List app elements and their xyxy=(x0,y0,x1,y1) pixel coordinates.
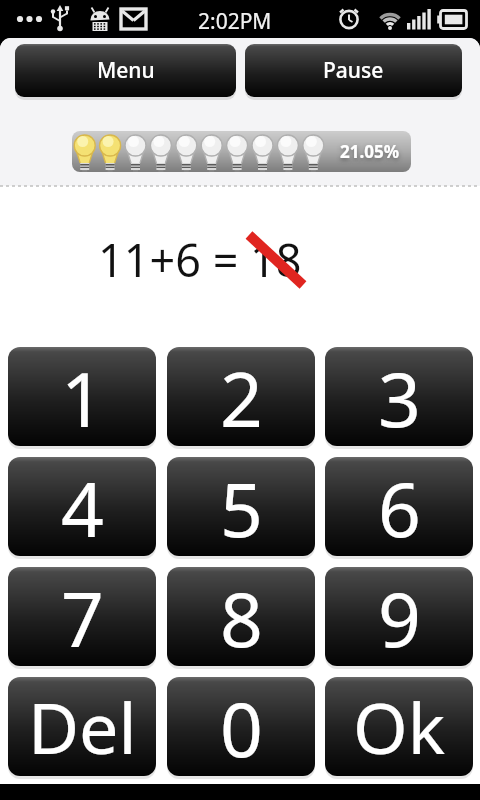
button[interactable]: 2 xyxy=(167,347,315,446)
staticText: 8 xyxy=(220,567,263,666)
button[interactable]: 4 xyxy=(8,457,156,556)
button[interactable]: 0 xyxy=(167,677,315,776)
button[interactable]: 9 xyxy=(325,567,473,666)
button[interactable]: 7 xyxy=(8,567,156,666)
button[interactable]: 8 xyxy=(167,567,315,666)
staticText: 1 xyxy=(61,347,104,446)
button[interactable]: Ok xyxy=(325,677,473,776)
staticText: 0 xyxy=(220,677,263,776)
staticText: Menu xyxy=(97,56,155,85)
button[interactable]: Del xyxy=(8,677,156,776)
button[interactable]: 3 xyxy=(325,347,473,446)
staticText: 7 xyxy=(61,567,104,666)
button[interactable]: Menu xyxy=(15,44,236,97)
staticText: 2 xyxy=(220,347,263,446)
button[interactable]: Pause xyxy=(245,44,462,97)
staticText: Del xyxy=(28,679,137,774)
button[interactable]: 6 xyxy=(325,457,473,556)
staticText: 6 xyxy=(378,457,421,556)
staticText: 9 xyxy=(378,567,421,666)
staticText: 2:02PM xyxy=(198,7,272,36)
button[interactable]: 5 xyxy=(167,457,315,556)
staticText: Ok xyxy=(353,679,446,774)
staticText: 3 xyxy=(378,347,421,446)
staticText: 5 xyxy=(220,457,263,556)
staticText: 4 xyxy=(61,457,104,556)
button[interactable]: 1 xyxy=(8,347,156,446)
staticText: Pause xyxy=(323,56,384,85)
staticText: 21.05% xyxy=(340,140,400,163)
staticText: 11+6 = 18 xyxy=(98,229,302,290)
